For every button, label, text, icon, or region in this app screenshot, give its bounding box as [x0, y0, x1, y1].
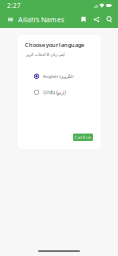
staticText: Urdu (اردو): [43, 89, 65, 95]
button[interactable]: Menu: [4, 11, 17, 28]
staticText: English (انگریزی): [43, 73, 73, 79]
button[interactable]: Confirm: [73, 134, 93, 141]
staticText: Choose your language: [25, 41, 84, 49]
staticText: Allah's Names: [18, 15, 64, 24]
button[interactable]: English (انگریزی): [25, 71, 93, 82]
button[interactable]: Bookmarks: [77, 11, 90, 28]
button[interactable]: Urdu (اردو): [25, 87, 93, 98]
button[interactable]: Search: [103, 11, 116, 28]
staticText: اپنی زبان کا انتخاب کریں: [25, 52, 64, 57]
button[interactable]: Share: [90, 11, 103, 28]
staticText: Confirm: [74, 135, 91, 140]
staticText: 2:27: [7, 1, 21, 10]
